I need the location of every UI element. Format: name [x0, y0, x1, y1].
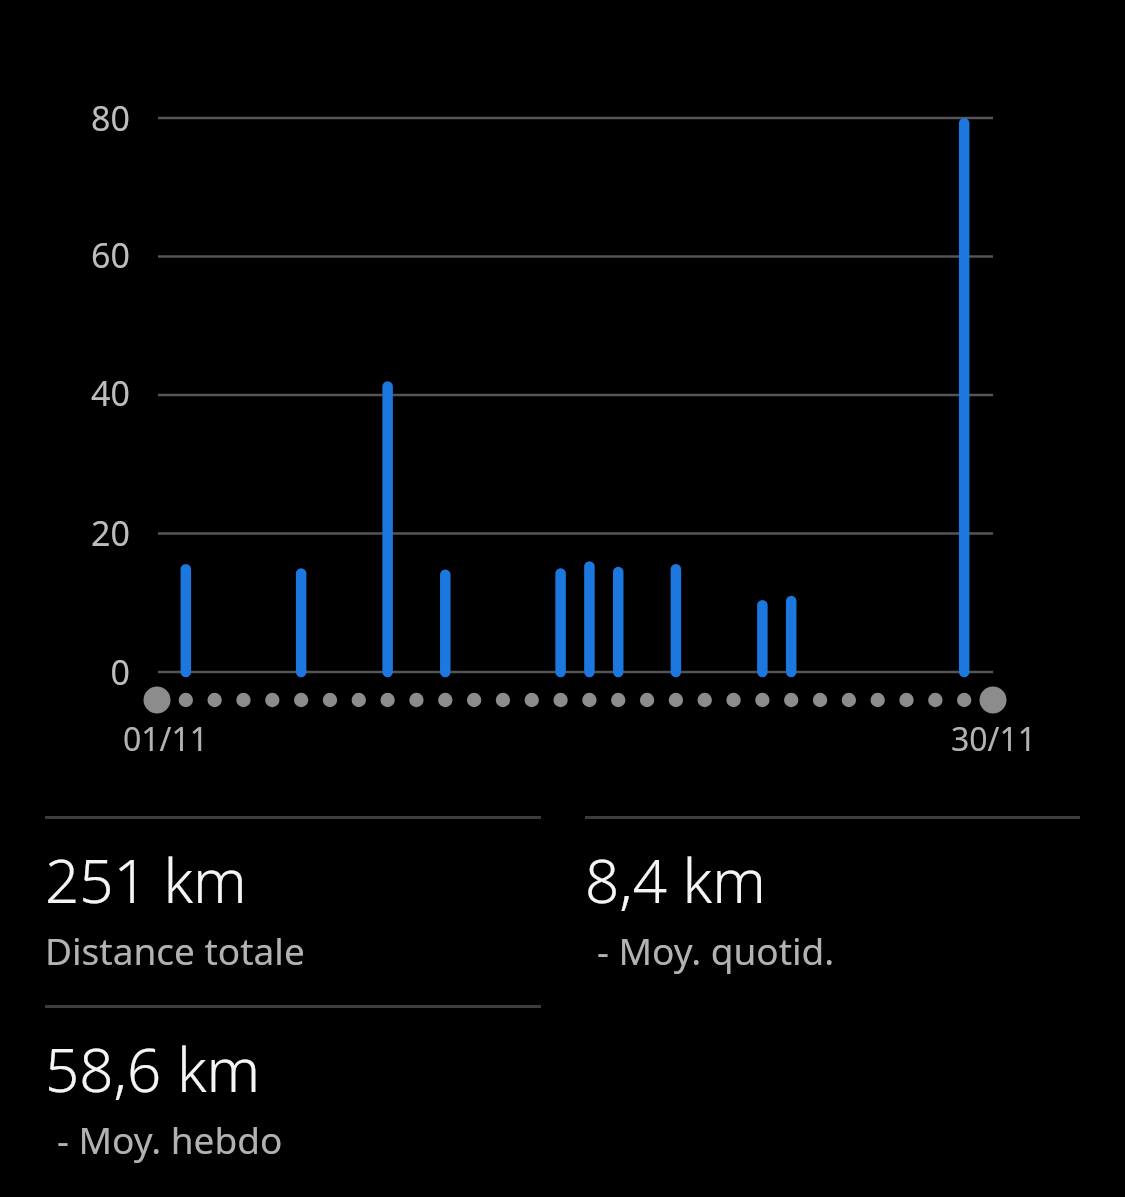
staticText: - Moy. hebdo [57, 1114, 283, 1164]
staticText: - Moy. quotid. [597, 925, 835, 975]
button[interactable]: 58,6 km [45, 1005, 541, 1164]
staticText: 8,4 km [585, 839, 766, 921]
staticText: 80 [18, 95, 130, 141]
button[interactable]: 8,4 km [585, 816, 1080, 975]
staticText: 60 [18, 232, 130, 278]
staticText: 40 [18, 370, 130, 416]
staticText: 0 [18, 649, 130, 695]
staticText: 58,6 km [45, 1028, 261, 1110]
staticText: 01/11 [123, 717, 209, 761]
staticText: 20 [18, 510, 130, 556]
button[interactable]: 251 km [45, 816, 541, 975]
staticText: 30/11 [951, 717, 1037, 761]
staticText: Distance totale [45, 925, 305, 975]
button[interactable]: Graphique de distance quotidienne, novem… [0, 0, 1125, 775]
staticText: 251 km [45, 839, 247, 921]
